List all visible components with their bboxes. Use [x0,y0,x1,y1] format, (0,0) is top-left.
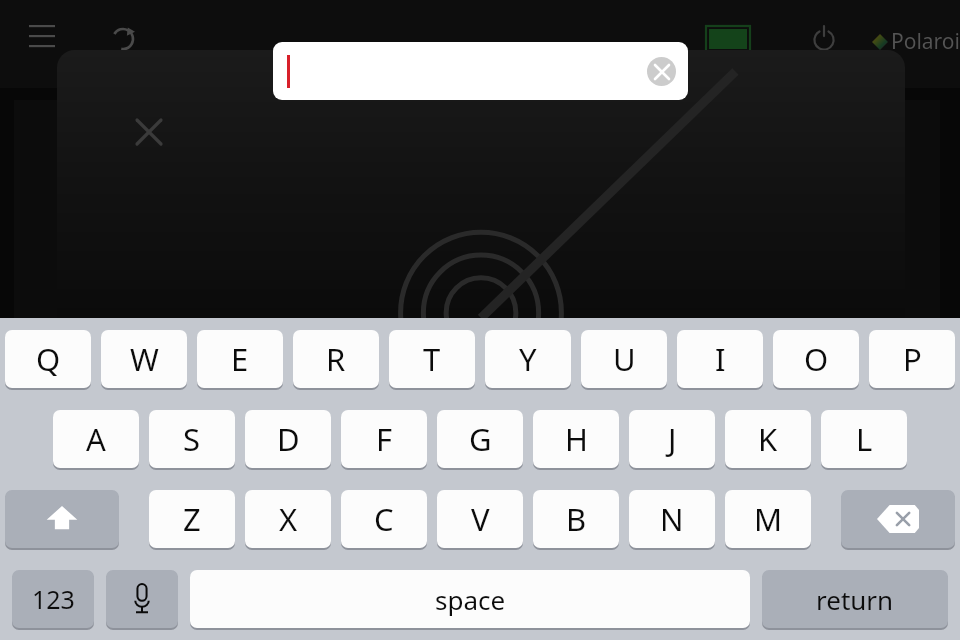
staticText: K [758,418,778,460]
button[interactable]: J [629,410,715,468]
button[interactable]: D [245,410,331,468]
button[interactable]: L [821,410,907,468]
staticText: J [668,418,677,460]
button[interactable]: Q [5,330,91,388]
staticText: I [715,338,726,380]
staticText: R [326,338,346,380]
staticText: N [660,498,684,540]
staticText: B [566,498,587,540]
staticText: Y [519,338,537,380]
button[interactable]: Menu [22,18,62,58]
button[interactable]: S [149,410,235,468]
button[interactable]: R [293,330,379,388]
button[interactable]: Clear text [647,57,676,86]
button[interactable]: Clear text [273,42,688,100]
button[interactable]: W [101,330,187,388]
staticText: return [816,582,894,617]
button[interactable]: Power [806,20,842,56]
button[interactable]: K [725,410,811,468]
button[interactable]: C [341,490,427,548]
button[interactable]: Backspace [841,490,955,548]
button[interactable]: space [190,570,750,628]
staticText: space [435,582,506,617]
staticText: X [279,498,298,540]
button[interactable]: G [437,410,523,468]
button[interactable]: Close [129,112,169,152]
button[interactable]: 123 [12,570,94,628]
staticText: D [277,418,300,460]
button[interactable]: N [629,490,715,548]
staticText: W [130,338,159,380]
button[interactable]: Reload [104,20,142,58]
button[interactable]: M [725,490,811,548]
button[interactable]: F [341,410,427,468]
staticText: L [856,418,873,460]
button[interactable]: I [677,330,763,388]
staticText: Q [36,338,61,380]
button[interactable]: E [197,330,283,388]
button[interactable]: A [53,410,139,468]
staticText: M [754,498,783,540]
staticText: O [804,338,829,380]
button[interactable]: T [389,330,475,388]
button[interactable]: B [533,490,619,548]
staticText: Polaroid [891,27,960,56]
button[interactable]: return [762,570,948,628]
staticText: 123 [32,582,75,616]
button[interactable]: P [869,330,955,388]
staticText: S [183,418,201,460]
staticText: E [231,338,249,380]
staticText: V [471,498,490,540]
button[interactable]: H [533,410,619,468]
button[interactable]: X [245,490,331,548]
staticText: C [374,498,394,540]
staticText: U [613,338,636,380]
button[interactable]: Voice input [106,570,178,628]
button[interactable]: U [581,330,667,388]
button[interactable]: Z [149,490,235,548]
staticText: H [565,418,588,460]
staticText: P [903,338,922,380]
staticText: G [469,418,492,460]
staticText: T [423,338,441,380]
staticText: A [86,418,106,460]
button[interactable]: Shift [5,490,119,548]
button[interactable]: O [773,330,859,388]
button[interactable]: V [437,490,523,548]
button[interactable]: Y [485,330,571,388]
staticText: Z [183,498,201,540]
staticText: F [376,418,393,460]
